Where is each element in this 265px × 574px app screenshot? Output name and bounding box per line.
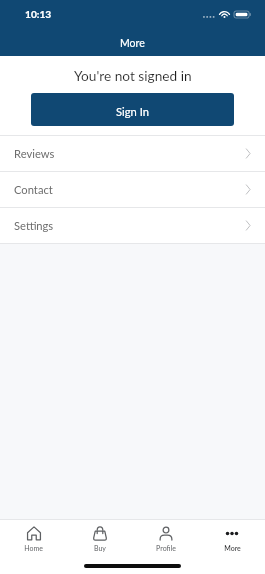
staticText: Reviews	[14, 147, 55, 160]
staticText: More	[224, 544, 241, 552]
staticText: Profile	[156, 544, 176, 552]
button[interactable]: Buy	[67, 520, 133, 552]
staticText: Contact	[14, 183, 53, 196]
staticText: Home	[24, 544, 43, 552]
staticText: Buy	[94, 544, 106, 552]
button[interactable]: Profile	[133, 520, 199, 552]
staticText: Sign In	[116, 105, 149, 118]
button[interactable]: Reviews	[0, 136, 265, 171]
button[interactable]: More	[199, 520, 265, 552]
staticText: You're not signed in	[74, 67, 192, 83]
button[interactable]: Home	[0, 520, 67, 552]
staticText: Settings	[14, 219, 54, 232]
staticText: More	[120, 37, 145, 50]
button[interactable]: Sign In	[31, 93, 234, 126]
button[interactable]: Settings	[0, 208, 265, 243]
staticText: 10:13	[25, 8, 52, 20]
button[interactable]: Contact	[0, 172, 265, 207]
